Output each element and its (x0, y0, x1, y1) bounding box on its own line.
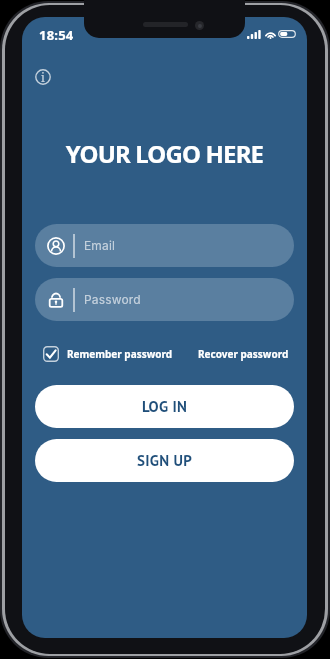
button[interactable]: LOG IN (35, 385, 294, 428)
staticText: Remember password (67, 347, 173, 361)
button[interactable]: Recover password (198, 347, 289, 361)
button[interactable]: Info (30, 64, 56, 90)
staticText: Password (84, 292, 141, 307)
staticText: LOG IN (142, 397, 188, 416)
staticText: 18:54 (39, 26, 74, 44)
staticText: Recover password (198, 347, 289, 361)
staticText: Email (84, 238, 116, 253)
staticText: SIGN UP (137, 451, 193, 470)
staticText: i (41, 69, 45, 85)
button[interactable]: Remember password (43, 346, 173, 362)
button[interactable]: SIGN UP (35, 439, 294, 482)
button[interactable]: Email (35, 224, 294, 267)
staticText: YOUR LOGO HERE (22, 137, 307, 170)
button[interactable]: Password (35, 278, 294, 321)
